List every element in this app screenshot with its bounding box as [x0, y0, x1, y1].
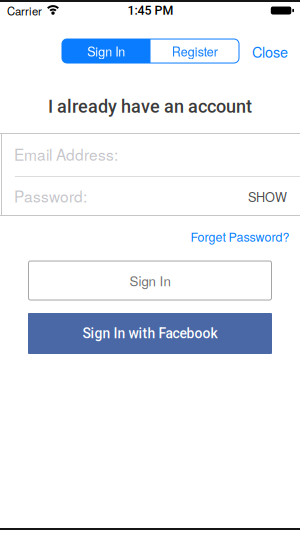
button[interactable]: Sign In with Facebook — [28, 313, 272, 354]
staticText: Carrier — [7, 2, 42, 19]
staticText: I already have an account — [48, 96, 252, 117]
button[interactable]: Forget Password? — [119, 228, 289, 245]
staticText: SHOW — [248, 187, 287, 205]
button[interactable]: Close — [218, 41, 288, 62]
staticText: Register — [172, 42, 218, 60]
staticText: Email Address: — [14, 143, 118, 165]
button[interactable]: Password: — [0, 176, 300, 216]
button[interactable]: SHOW — [248, 187, 287, 205]
button[interactable]: Sign In — [28, 261, 271, 300]
button[interactable]: Sign In — [62, 39, 150, 63]
button[interactable]: Email Address: — [0, 133, 300, 174]
staticText: Forget Password? — [190, 228, 289, 245]
staticText: Password: — [14, 185, 87, 207]
button[interactable]: Register — [150, 39, 239, 63]
staticText: Sign In with Facebook — [82, 325, 217, 342]
staticText: Close — [252, 41, 288, 62]
staticText: Sign In — [87, 42, 125, 60]
staticText: 1:45 PM — [127, 3, 173, 18]
staticText: Sign In — [129, 271, 170, 290]
